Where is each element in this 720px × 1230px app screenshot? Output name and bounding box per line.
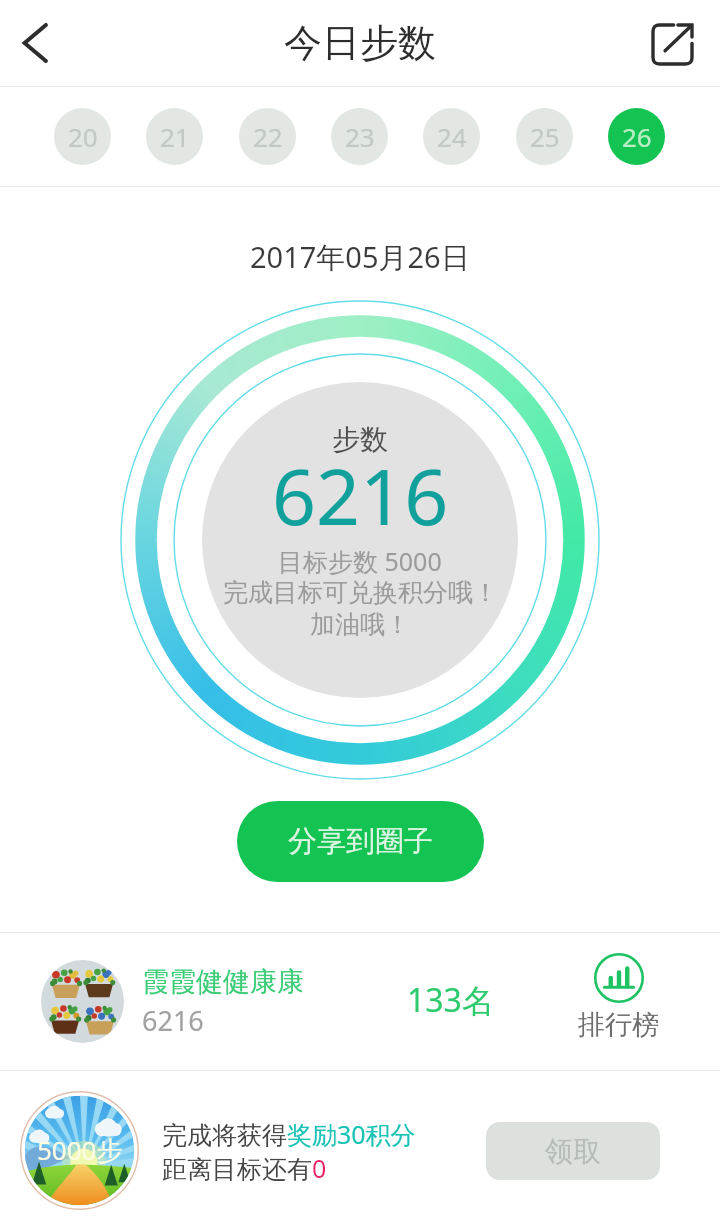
staticText: 6216 <box>142 1002 204 1039</box>
staticText: 距离目标还有0 <box>162 1151 327 1185</box>
button[interactable]: 霞霞健健康康 <box>0 933 720 1070</box>
staticText: 23 <box>345 119 375 154</box>
staticText: 22 <box>253 119 283 154</box>
button[interactable]: 24 <box>423 108 480 165</box>
button[interactable]: Share <box>634 0 720 86</box>
staticText: 完成目标可兑换积分哦！ <box>223 577 498 608</box>
button[interactable]: Back <box>0 0 88 86</box>
button[interactable]: 26 <box>608 108 665 165</box>
staticText: 26 <box>622 119 652 154</box>
staticText: 领取 <box>545 1134 601 1169</box>
staticText: 20 <box>68 119 98 154</box>
staticText: 今日步数 <box>284 19 436 67</box>
staticText: 加油哦！ <box>310 609 410 640</box>
button[interactable]: 21 <box>146 108 203 165</box>
button[interactable]: 排行榜 <box>578 953 659 1042</box>
staticText: 6216 <box>272 443 449 548</box>
staticText: 21 <box>160 119 190 154</box>
button[interactable]: 23 <box>331 108 388 165</box>
staticText: 步数 <box>332 422 388 457</box>
button[interactable]: 领取 <box>486 1122 660 1180</box>
button[interactable]: 22 <box>239 108 296 165</box>
button[interactable]: 20 <box>54 108 111 165</box>
staticText: 24 <box>437 119 467 154</box>
staticText: 2017年05月26日 <box>250 237 470 277</box>
button[interactable]: 分享到圈子 <box>237 801 484 882</box>
staticText: 133名 <box>407 978 494 1022</box>
button[interactable]: 25 <box>516 108 573 165</box>
staticText: 目标步数 5000 <box>278 544 442 578</box>
staticText: 25 <box>530 119 560 154</box>
staticText: 分享到圈子 <box>288 823 433 860</box>
staticText: 完成将获得奖励30积分 <box>162 1117 416 1151</box>
staticText: 排行榜 <box>578 1008 659 1042</box>
staticText: 霞霞健健康康 <box>142 965 304 999</box>
staticText: 5000步 <box>37 1132 123 1168</box>
